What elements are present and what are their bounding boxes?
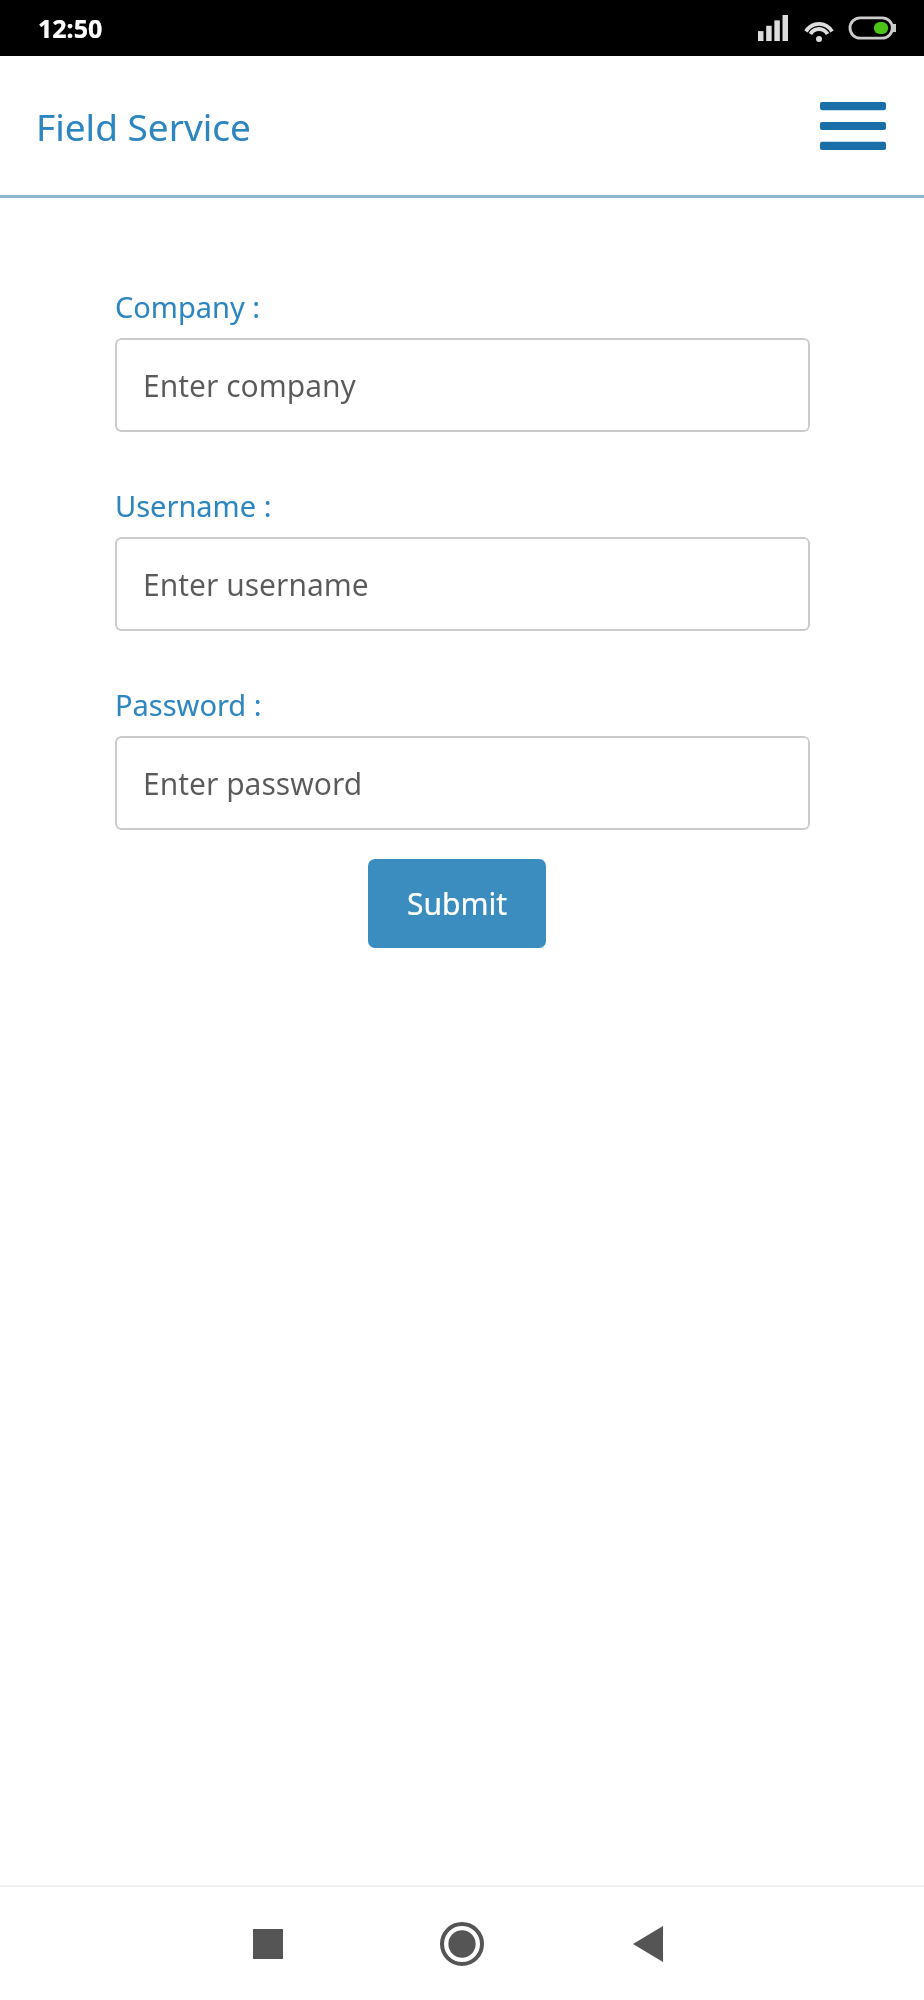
button[interactable]: Home (417, 1899, 507, 1989)
staticText: Enter username (143, 564, 369, 605)
button[interactable]: Enter company (115, 338, 810, 432)
button[interactable]: Enter username (115, 537, 810, 631)
staticText: Submit (407, 883, 508, 924)
button[interactable]: Submit (368, 859, 546, 948)
staticText: Field Service (36, 101, 251, 151)
staticText: Enter company (143, 365, 356, 406)
staticText: Enter password (143, 763, 363, 804)
button[interactable]: Recent apps (223, 1899, 313, 1989)
staticText: Username : (115, 486, 272, 525)
staticText: Password : (115, 685, 262, 724)
button[interactable]: Enter password (115, 736, 810, 830)
staticText: Company : (115, 287, 261, 326)
button[interactable]: Back (603, 1899, 693, 1989)
staticText: 12:50 (38, 11, 103, 45)
button[interactable]: Open navigation menu (820, 98, 886, 154)
